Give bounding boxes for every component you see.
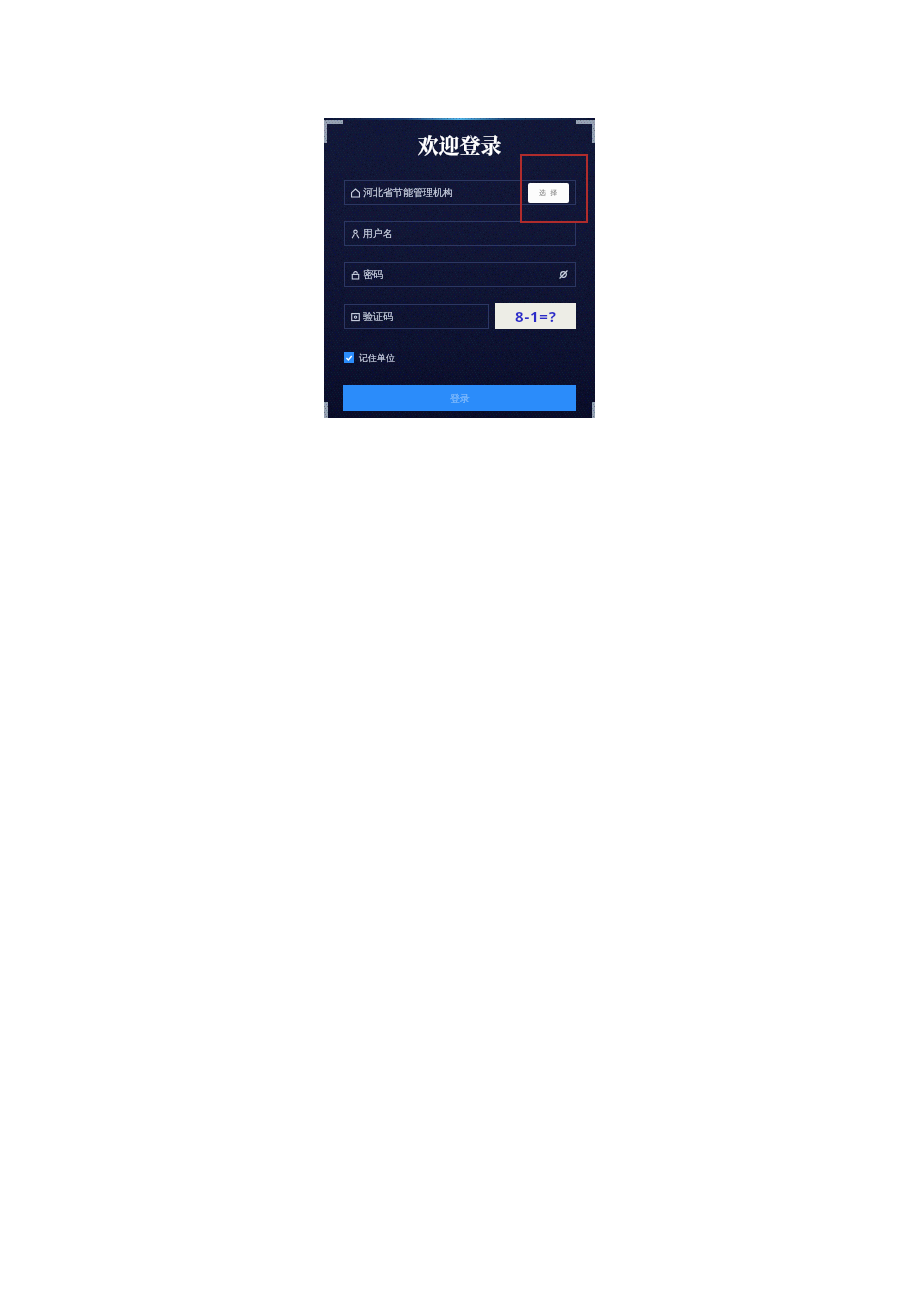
staticText: 密码 — [363, 268, 383, 281]
button[interactable]: 选 择 — [528, 183, 569, 203]
button[interactable]: 河北省节能管理机构 — [344, 180, 576, 205]
button[interactable]: 密码 — [344, 262, 576, 287]
staticText: 用户名 — [363, 227, 393, 240]
button[interactable]: Show password — [558, 269, 569, 280]
button[interactable]: 记住单位 — [344, 352, 395, 363]
staticText: 记住单位 — [359, 352, 395, 363]
staticText: 验证码 — [363, 310, 393, 323]
button[interactable]: Refresh captcha — [495, 303, 576, 329]
button[interactable]: 登录 — [343, 385, 576, 411]
button[interactable]: 验证码 — [344, 304, 489, 329]
staticText: 登录 — [450, 392, 470, 405]
staticText: 8-1=? — [515, 306, 557, 326]
staticText: 选 择 — [539, 188, 559, 198]
button[interactable]: 用户名 — [344, 221, 576, 246]
staticText: 河北省节能管理机构 — [363, 186, 453, 199]
staticText: 欢迎登录 — [324, 129, 595, 159]
